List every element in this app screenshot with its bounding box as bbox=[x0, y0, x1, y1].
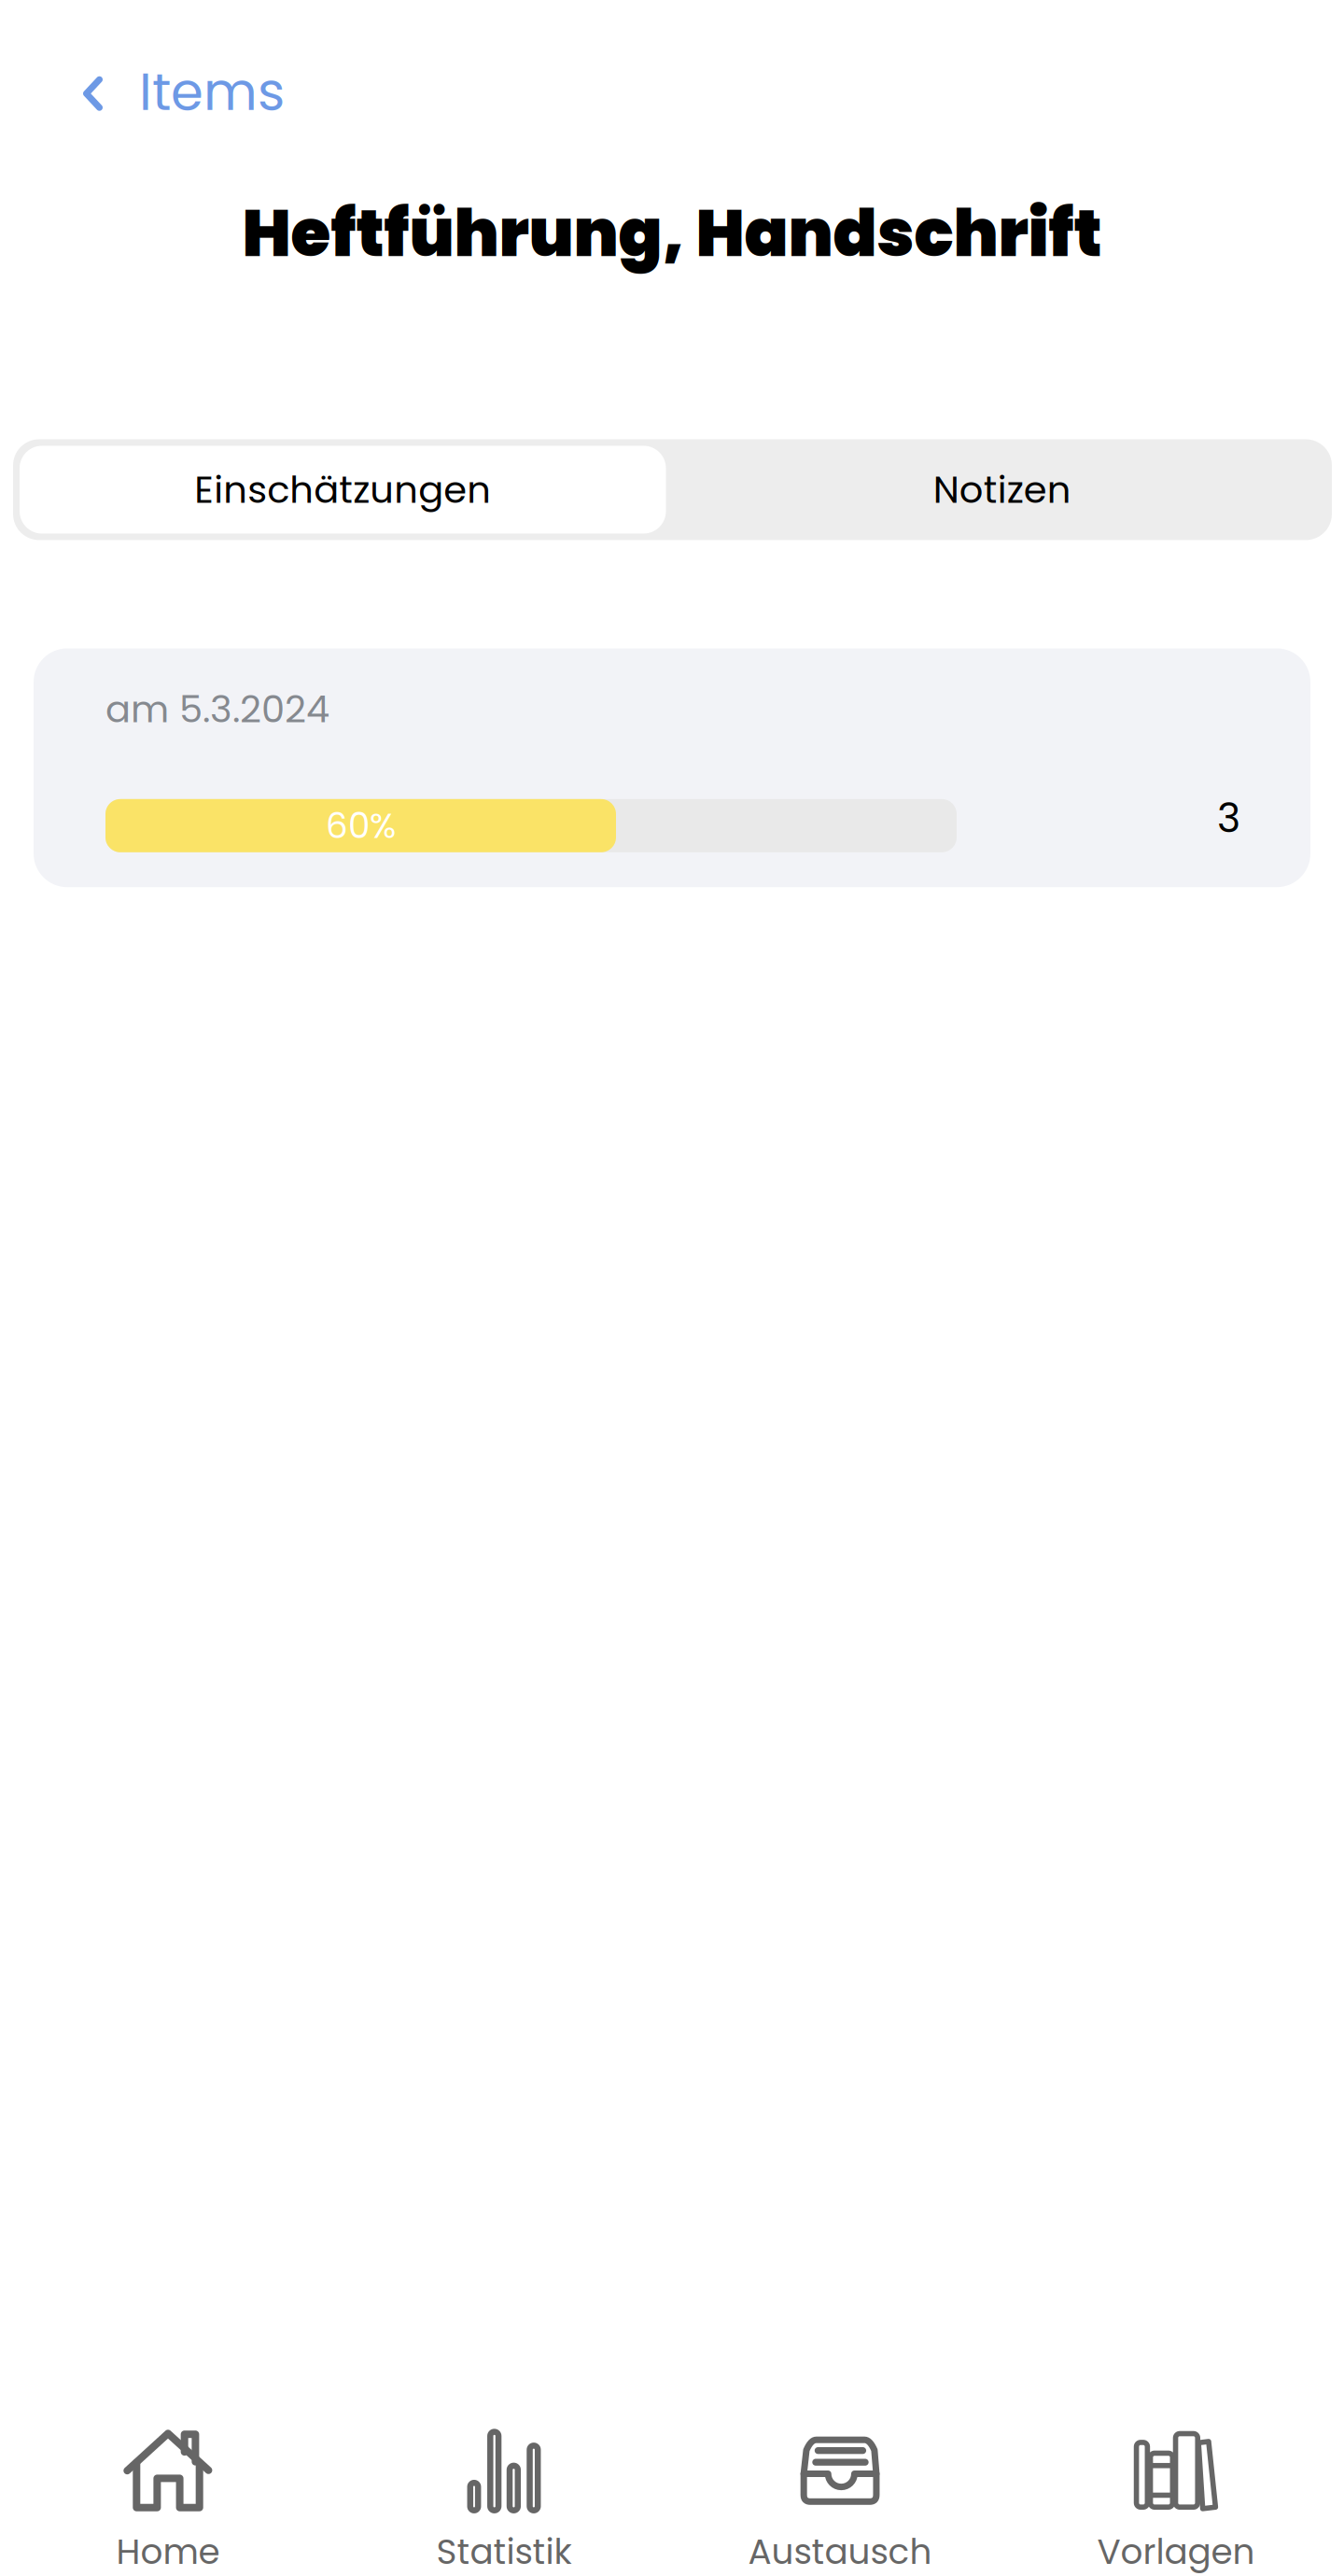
staticText: 3 bbox=[1217, 790, 1240, 846]
button[interactable]: Einschätzungen bbox=[13, 439, 672, 540]
staticText: 60% bbox=[326, 801, 396, 850]
staticText: Statistik bbox=[436, 2527, 572, 2576]
button[interactable]: Statistik bbox=[336, 2426, 672, 2576]
staticText: Austausch bbox=[748, 2527, 932, 2576]
button[interactable]: Vorlagen bbox=[1008, 2426, 1344, 2576]
staticText: am 5.3.2024 bbox=[105, 683, 329, 735]
staticText: Vorlagen bbox=[1097, 2527, 1255, 2576]
button[interactable]: Home bbox=[0, 2426, 336, 2576]
staticText: Notizen bbox=[933, 464, 1071, 516]
staticText: Home bbox=[116, 2527, 220, 2576]
staticText: Heftführung, Handschrift bbox=[242, 188, 1102, 279]
staticText: Items bbox=[139, 55, 285, 128]
button[interactable]: Items bbox=[0, 38, 313, 145]
staticText: Einschätzungen bbox=[194, 464, 491, 516]
button[interactable]: Notizen bbox=[672, 439, 1332, 540]
button[interactable]: Austausch bbox=[672, 2426, 1008, 2576]
